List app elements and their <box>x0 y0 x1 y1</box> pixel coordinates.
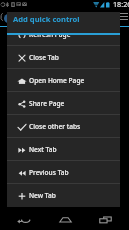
staticText: 18:26 <box>113 0 129 9</box>
button[interactable]: Home <box>48 208 82 230</box>
staticText: Refresh Page <box>29 30 71 39</box>
button[interactable]: Share Page <box>7 92 120 114</box>
button[interactable]: Back <box>7 208 41 230</box>
button[interactable]: Refresh Page <box>7 23 120 45</box>
button[interactable]: Recent apps <box>88 208 122 230</box>
staticText: Previous Tab <box>29 168 69 177</box>
staticText: Open Home Page <box>29 76 85 85</box>
staticText: Close other tabs <box>29 122 81 131</box>
staticText: Close Tab <box>29 53 59 62</box>
button[interactable]: Previous Tab <box>7 161 120 183</box>
staticText: New Tab <box>29 191 56 200</box>
button[interactable]: New Tab <box>7 184 120 206</box>
staticText: Next Tab <box>29 145 57 154</box>
button[interactable]: Next Tab <box>7 138 120 160</box>
staticText: Add quick control <box>13 14 80 24</box>
button[interactable]: Close other tabs <box>7 115 120 137</box>
button[interactable]: Close Tab <box>7 46 120 68</box>
staticText: Share Page <box>29 99 65 108</box>
button[interactable]: Open Home Page <box>7 69 120 91</box>
